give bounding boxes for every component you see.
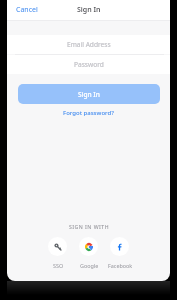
staticText: Google bbox=[80, 262, 99, 269]
button[interactable]: Sign In bbox=[18, 84, 160, 104]
button[interactable]: Sign in with Google bbox=[79, 237, 98, 269]
staticText: Sign In bbox=[77, 5, 101, 15]
staticText: Forgot password? bbox=[63, 109, 114, 117]
button[interactable]: Forgot password? bbox=[59, 107, 118, 119]
button[interactable]: Cancel bbox=[7, 2, 44, 18]
staticText: SSO bbox=[53, 262, 64, 269]
staticText: Password bbox=[74, 60, 104, 69]
staticText: Facebook bbox=[108, 262, 133, 269]
staticText: Cancel bbox=[16, 5, 38, 15]
staticText: SIGN IN WITH bbox=[69, 223, 109, 230]
button[interactable]: Sign in with SSO bbox=[48, 237, 67, 269]
staticText: Sign In bbox=[78, 90, 100, 99]
staticText: Email Address bbox=[67, 40, 111, 49]
button[interactable]: Sign in with Facebook bbox=[110, 237, 129, 269]
